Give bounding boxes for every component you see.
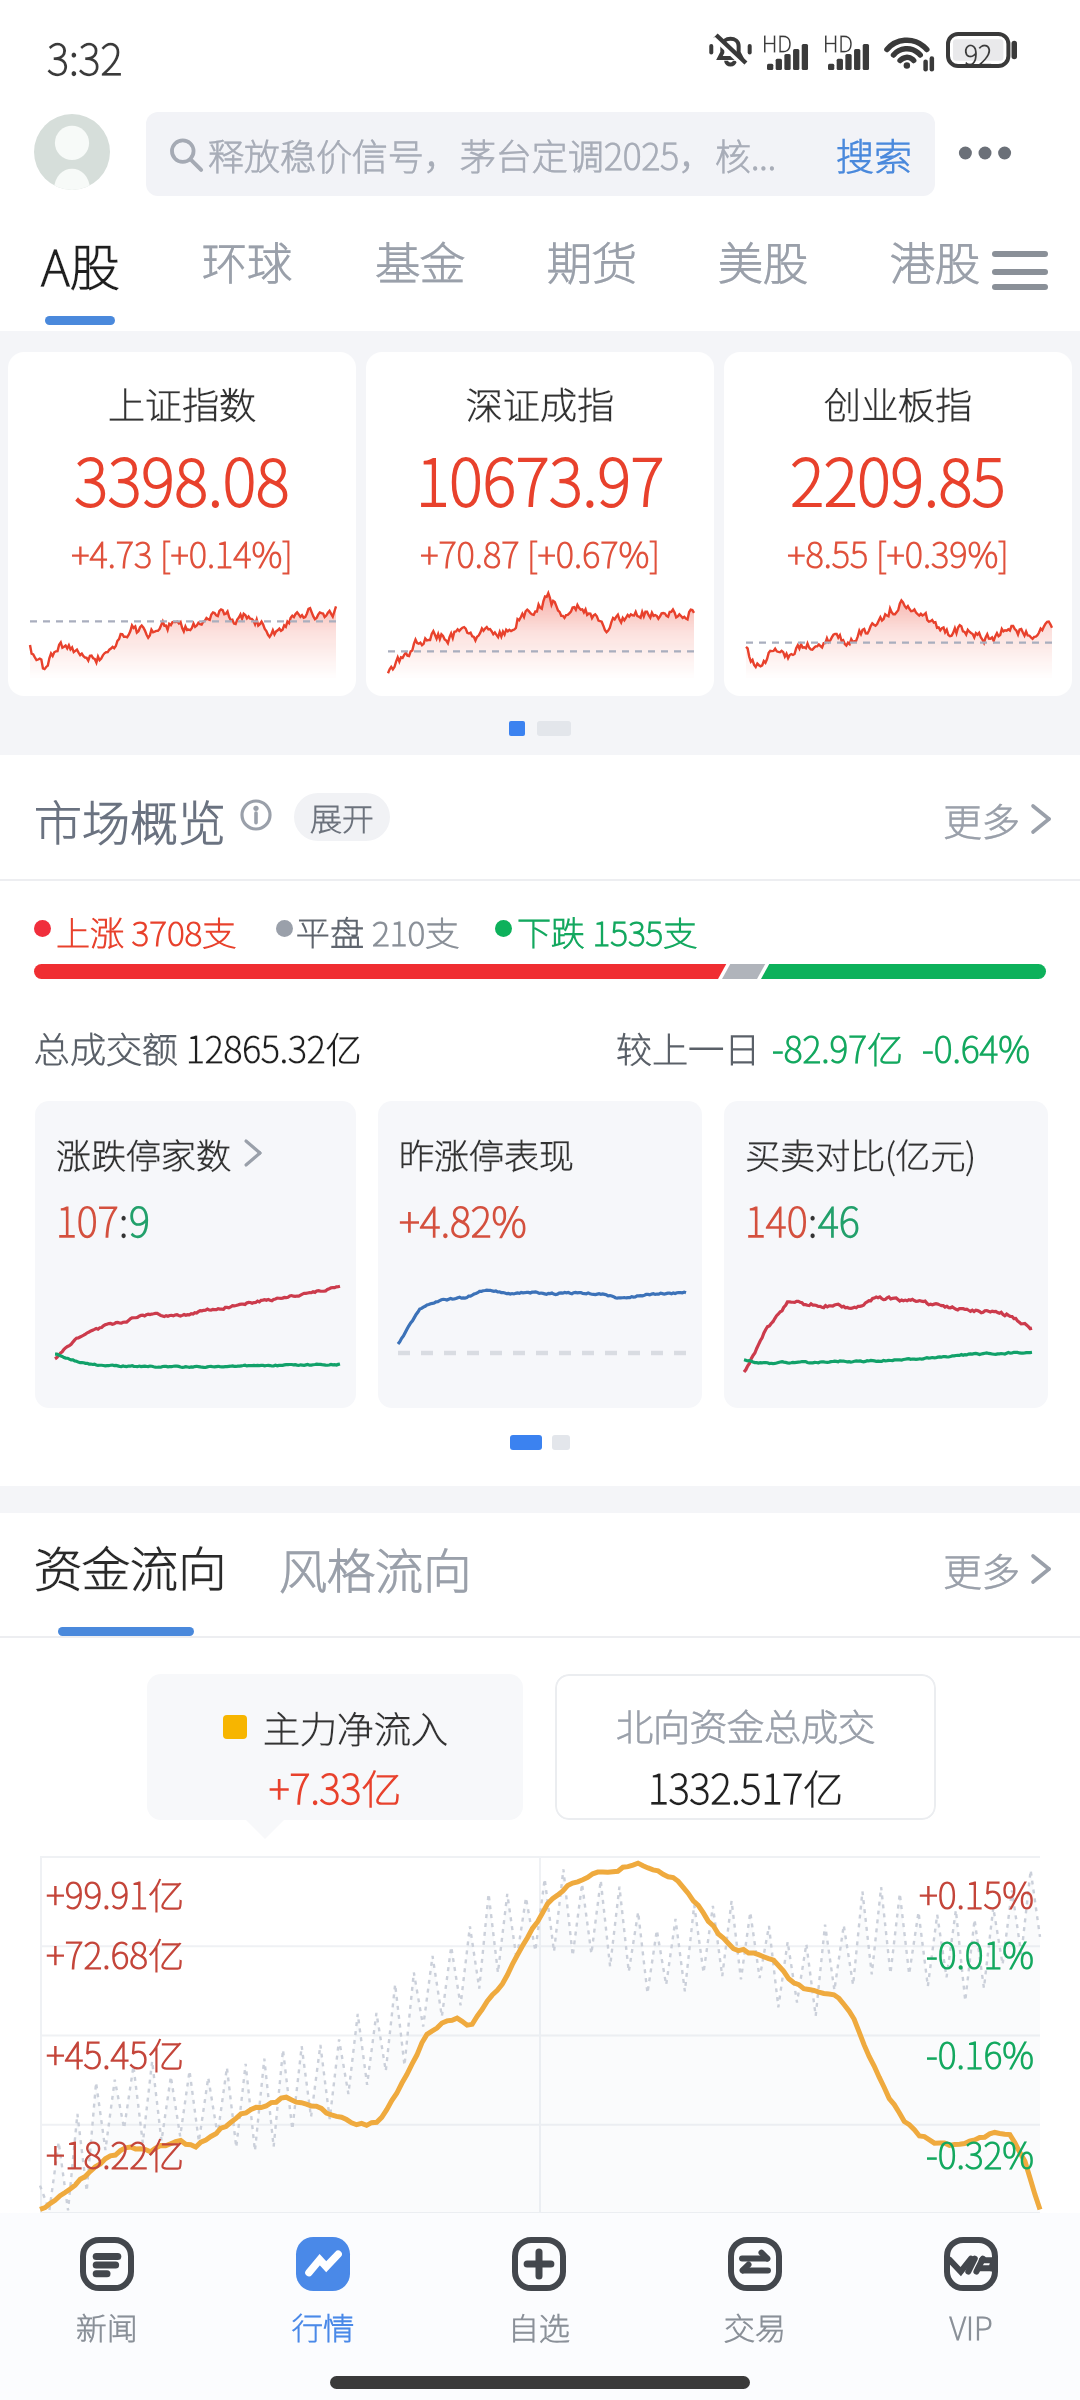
staticText: 深证成指 bbox=[366, 376, 714, 430]
staticText: 行情 bbox=[215, 2304, 431, 2349]
staticText: +70.87 [+0.67%] bbox=[366, 527, 714, 578]
staticText: 环球 bbox=[202, 228, 293, 293]
staticText: -82.97亿 bbox=[772, 1021, 904, 1073]
staticText: +99.91亿 bbox=[46, 1867, 185, 1919]
staticText: HD bbox=[762, 26, 792, 58]
staticText: 92 bbox=[946, 34, 1010, 73]
button[interactable]: VIP bbox=[863, 2213, 1079, 2363]
staticText: +45.45亿 bbox=[46, 2027, 185, 2079]
staticText: 9 bbox=[129, 1191, 150, 1249]
staticText: 下跌 1535支 bbox=[517, 907, 698, 956]
staticText: +7.33亿 bbox=[147, 1758, 523, 1816]
staticText: 107 bbox=[56, 1191, 119, 1249]
button[interactable]: 市场概览 bbox=[34, 785, 227, 855]
staticText: +18.22亿 bbox=[46, 2127, 185, 2179]
button[interactable]: 行情 bbox=[215, 2213, 431, 2363]
staticText: A股 bbox=[41, 228, 120, 300]
staticText: +8.55 [+0.39%] bbox=[724, 527, 1072, 578]
staticText: 140 bbox=[745, 1191, 808, 1249]
staticText: 平盘 bbox=[296, 907, 364, 956]
button[interactable]: 新闻 bbox=[0, 2213, 215, 2363]
button[interactable]: 资金流向 bbox=[34, 1531, 227, 1601]
button[interactable]: 风格流向 bbox=[279, 1533, 472, 1603]
button[interactable]: 深证成指 bbox=[366, 352, 714, 696]
button[interactable]: 更多 bbox=[944, 791, 1051, 847]
staticText: -0.32% bbox=[34, 2127, 1034, 2179]
staticText: 上证指数 bbox=[8, 376, 356, 430]
staticText: 3:32 bbox=[47, 26, 123, 87]
staticText: 自选 bbox=[431, 2304, 647, 2349]
staticText: 创业板指 bbox=[724, 376, 1072, 430]
staticText: +4.73 [+0.14%] bbox=[8, 527, 356, 578]
staticText: 2209.85 bbox=[724, 432, 1072, 525]
staticText: 主力净流入 bbox=[263, 1700, 448, 1754]
staticText: HD bbox=[823, 26, 853, 58]
button[interactable]: More options bbox=[950, 118, 1020, 188]
button[interactable]: 创业板指 bbox=[724, 352, 1072, 696]
button[interactable]: 更多 bbox=[944, 1541, 1051, 1597]
staticText: +0.15% bbox=[34, 1867, 1034, 1919]
staticText: : bbox=[119, 1191, 129, 1249]
staticText: 美股 bbox=[718, 228, 809, 293]
button[interactable]: 展开 bbox=[294, 793, 390, 841]
staticText: 10673.97 bbox=[366, 432, 714, 525]
staticText: 1332.517亿 bbox=[555, 1758, 936, 1816]
staticText: 买卖对比(亿元) bbox=[745, 1128, 976, 1179]
staticText: 期货 bbox=[547, 228, 638, 293]
staticText: 基金 bbox=[375, 228, 466, 293]
button[interactable]: 上证指数 bbox=[8, 352, 356, 696]
staticText: : bbox=[808, 1191, 818, 1249]
staticText: 风格流向 bbox=[279, 1533, 472, 1603]
staticText: VIP bbox=[863, 2304, 1079, 2349]
button[interactable]: 北向资金总成交 bbox=[555, 1674, 936, 1820]
button[interactable]: 释放稳价信号，茅台定调2025，核... bbox=[146, 112, 935, 196]
button[interactable]: 美股 bbox=[688, 216, 838, 328]
button[interactable]: 交易 bbox=[647, 2213, 863, 2363]
staticText: 昨涨停表现 bbox=[399, 1128, 575, 1179]
button[interactable]: 期货 bbox=[517, 216, 667, 328]
staticText: -0.16% bbox=[34, 2027, 1034, 2079]
button[interactable]: 港股 bbox=[860, 216, 1010, 328]
button[interactable]: 主力净流入 bbox=[147, 1674, 523, 1820]
staticText: 涨跌停家数 bbox=[56, 1128, 232, 1179]
staticText: 更多 bbox=[944, 792, 1021, 847]
staticText: 展开 bbox=[310, 794, 375, 840]
staticText: +4.82% bbox=[399, 1191, 527, 1249]
staticText: 210支 bbox=[372, 907, 460, 956]
staticText: 较上一日 bbox=[616, 1021, 761, 1073]
staticText: 总成交额 bbox=[34, 1021, 179, 1073]
staticText: 资金流向 bbox=[34, 1531, 227, 1601]
staticText: 上涨 3708支 bbox=[56, 907, 237, 956]
staticText: +72.68亿 bbox=[46, 1927, 185, 1979]
staticText: -0.64% bbox=[922, 1021, 1030, 1073]
button[interactable]: 基金 bbox=[345, 216, 495, 328]
button[interactable]: 环球 bbox=[172, 216, 322, 328]
staticText: 新闻 bbox=[0, 2304, 215, 2349]
staticText: 12865.32亿 bbox=[186, 1021, 362, 1073]
button[interactable]: 昨涨停表现 bbox=[378, 1101, 702, 1408]
staticText: 更多 bbox=[944, 1542, 1021, 1597]
staticText: -0.01% bbox=[34, 1927, 1034, 1979]
staticText: 释放稳价信号，茅台定调2025，核... bbox=[208, 128, 836, 180]
staticText: 交易 bbox=[647, 2304, 863, 2349]
button[interactable]: All categories bbox=[980, 228, 1060, 316]
button[interactable]: Profile bbox=[34, 114, 110, 190]
staticText: 北向资金总成交 bbox=[555, 1698, 936, 1752]
button[interactable]: 涨跌停家数 bbox=[35, 1101, 356, 1408]
staticText: 港股 bbox=[890, 228, 981, 293]
button[interactable]: 自选 bbox=[431, 2213, 647, 2363]
staticText: 3398.08 bbox=[8, 432, 356, 525]
button[interactable]: A股 bbox=[5, 216, 155, 328]
staticText: 市场概览 bbox=[34, 785, 227, 855]
button[interactable]: 买卖对比(亿元) bbox=[724, 1101, 1048, 1408]
staticText: 46 bbox=[818, 1191, 860, 1249]
staticText: 搜索 bbox=[836, 127, 913, 182]
